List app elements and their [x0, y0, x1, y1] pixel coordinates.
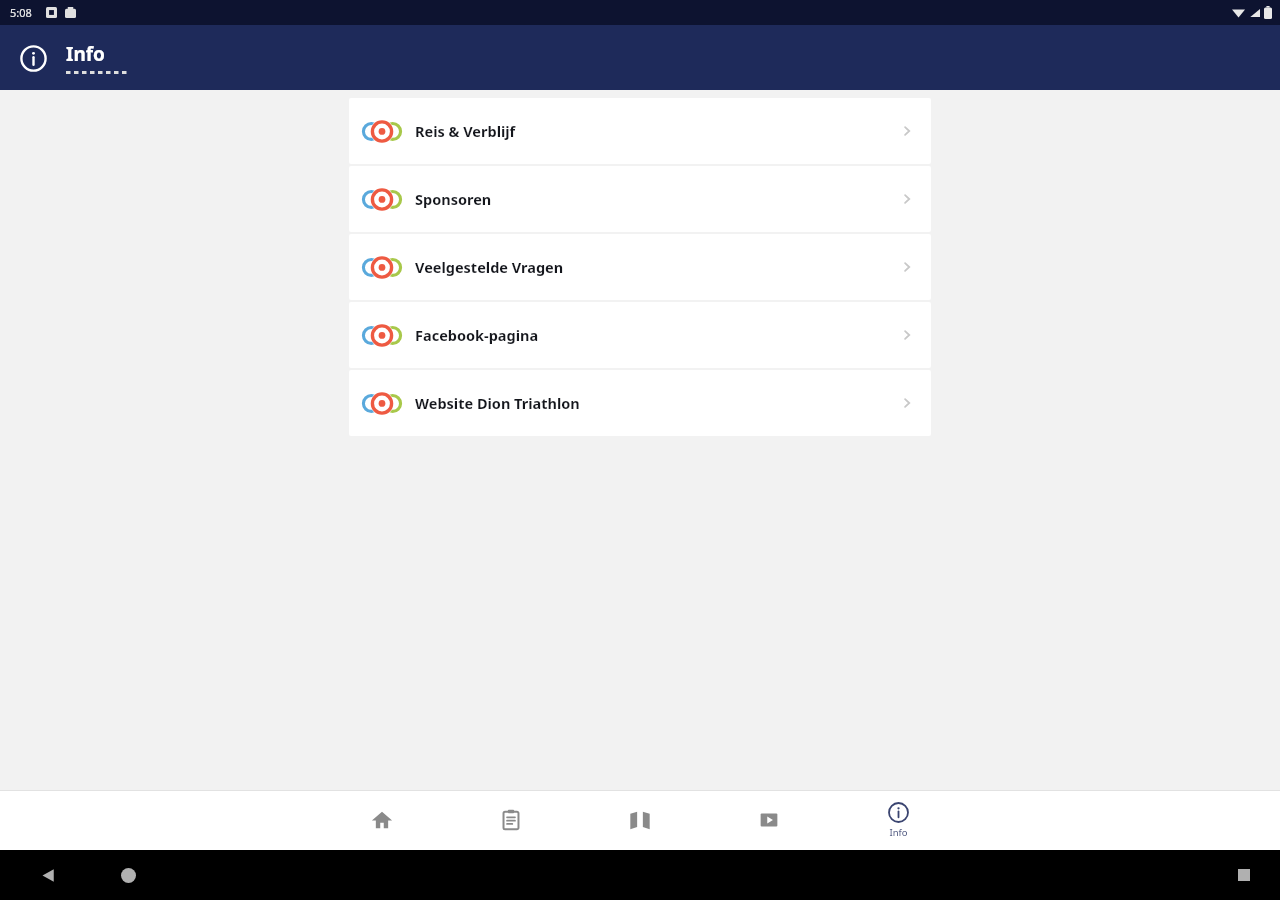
staticText: Website Dion Triathlon: [415, 393, 899, 413]
button[interactable]: Recent apps: [1226, 857, 1262, 893]
staticText: Info: [889, 826, 908, 839]
button[interactable]: Sponsoren: [349, 166, 931, 232]
button[interactable]: Info: [866, 792, 930, 848]
button[interactable]: Facebook-pagina: [349, 302, 931, 368]
staticText: Info: [66, 41, 105, 67]
button[interactable]: Home: [350, 792, 414, 848]
button[interactable]: Programma: [479, 792, 543, 848]
button[interactable]: Kaart: [608, 792, 672, 848]
button[interactable]: Website Dion Triathlon: [349, 370, 931, 436]
button[interactable]: Video: [737, 792, 801, 848]
button[interactable]: Veelgestelde Vragen: [349, 234, 931, 300]
staticText: 5:08: [10, 5, 32, 20]
staticText: Veelgestelde Vragen: [415, 257, 899, 277]
button[interactable]: Info: [18, 43, 48, 73]
button[interactable]: Back: [30, 857, 66, 893]
staticText: Facebook-pagina: [415, 325, 899, 345]
staticText: Sponsoren: [415, 189, 899, 209]
staticText: Reis & Verblijf: [415, 121, 899, 141]
button[interactable]: Home: [110, 857, 146, 893]
button[interactable]: Reis & Verblijf: [349, 98, 931, 164]
